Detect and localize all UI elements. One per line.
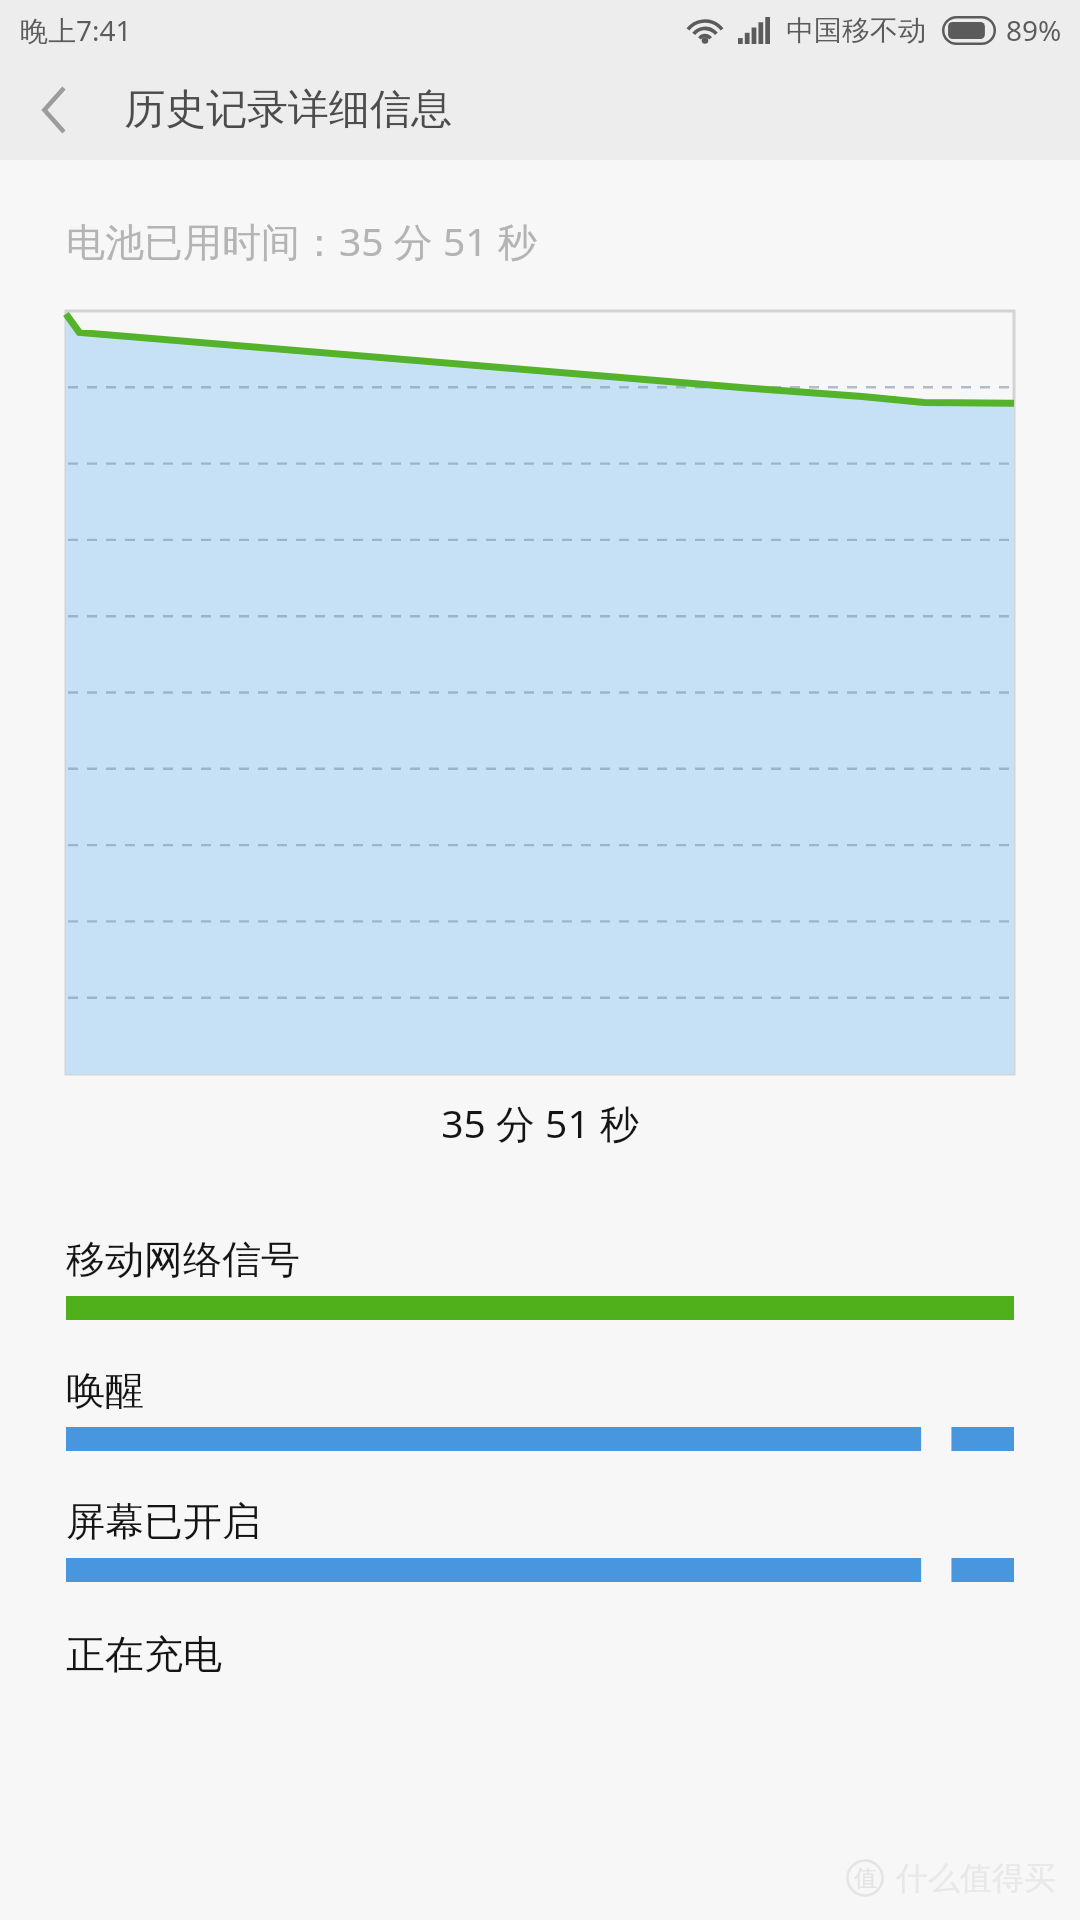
staticText: 中国移不动 bbox=[786, 13, 926, 48]
staticText: 什么值得买 bbox=[896, 1858, 1056, 1898]
staticText: 值 bbox=[854, 1864, 877, 1893]
button[interactable]: 屏幕已开启 bbox=[66, 1497, 1014, 1582]
staticText: 电池已用时间：35 分 51 秒 bbox=[66, 214, 537, 267]
button[interactable]: 唤醒 bbox=[66, 1366, 1014, 1451]
button[interactable]: 正在充电 bbox=[66, 1630, 1080, 1679]
staticText: 唤醒 bbox=[66, 1366, 144, 1415]
staticText: 屏幕已开启 bbox=[66, 1497, 261, 1546]
button[interactable]: 移动网络信号 bbox=[66, 1235, 1014, 1320]
staticText: 移动网络信号 bbox=[66, 1235, 300, 1284]
staticText: 晚上7:41 bbox=[20, 11, 132, 49]
staticText: 89% bbox=[1006, 11, 1062, 49]
button[interactable]: 返回 bbox=[18, 73, 92, 147]
staticText: 35 分 51 秒 bbox=[0, 1096, 1080, 1149]
staticText: 历史记录详细信息 bbox=[124, 84, 452, 136]
